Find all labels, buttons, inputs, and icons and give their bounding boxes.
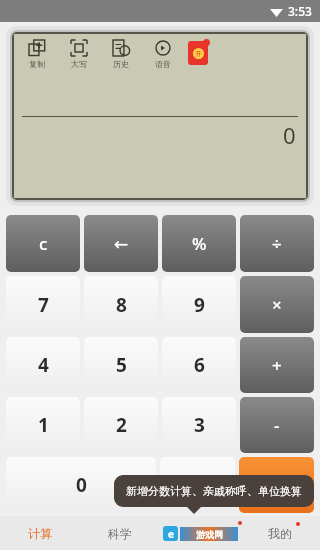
button[interactable]: 8 [84, 276, 158, 333]
staticText: ÷ [272, 232, 282, 255]
button[interactable]: 大写 [64, 39, 94, 69]
staticText: 6 [194, 352, 205, 378]
button[interactable]: 0 [6, 457, 156, 513]
staticText: e [168, 527, 174, 541]
button[interactable]: 7 [6, 276, 80, 333]
staticText: × [272, 293, 282, 316]
staticText: . [195, 472, 201, 498]
staticText: + [272, 354, 282, 377]
staticText: 我的 [268, 526, 292, 541]
button[interactable]: 历史 [106, 39, 136, 69]
staticText: 语音 [155, 59, 171, 69]
staticText: 7 [38, 292, 49, 318]
button[interactable]: 新增分数计算、亲戚称呼、单位换算 [114, 475, 314, 507]
button[interactable]: 4 [6, 337, 80, 393]
staticText: 计算 [28, 526, 52, 541]
staticText: 4 [38, 352, 49, 378]
staticText: 8 [116, 292, 127, 318]
button[interactable]: ← [84, 215, 158, 272]
button[interactable]: ÷ [240, 215, 314, 272]
staticText: 科学 [108, 526, 132, 541]
button[interactable]: × [240, 276, 314, 333]
staticText: 3 [194, 412, 205, 438]
staticText: 新增分数计算、亲戚称呼、单位换算 [126, 484, 302, 498]
staticText: % [192, 232, 207, 255]
button[interactable]: % [162, 215, 236, 272]
staticText: 2 [116, 412, 127, 438]
button[interactable]: 3 [162, 397, 236, 453]
staticText: = [271, 472, 282, 498]
staticText: 5 [116, 352, 127, 378]
button[interactable]: 红包 [188, 39, 210, 65]
button[interactable]: c [6, 215, 80, 272]
button[interactable]: 9 [162, 276, 236, 333]
button[interactable]: + [240, 337, 314, 393]
staticText: 开 [195, 49, 202, 58]
button[interactable]: . [160, 457, 235, 513]
button[interactable]: 2 [84, 397, 158, 453]
button[interactable]: 语音 [148, 39, 178, 69]
button[interactable]: 复制 [22, 39, 52, 69]
button[interactable]: - [240, 397, 314, 453]
button[interactable]: 5 [84, 337, 158, 393]
button[interactable]: 1 [6, 397, 80, 453]
staticText: 0 [76, 472, 87, 498]
staticText: 大写 [71, 59, 87, 69]
staticText: 复制 [29, 59, 45, 69]
button[interactable]: 科学 [80, 516, 160, 550]
button[interactable]: = [239, 457, 314, 513]
button[interactable]: 我的 [240, 516, 320, 550]
staticText: 历史 [113, 59, 129, 69]
staticText: 3:53 [288, 3, 312, 19]
staticText: c [39, 232, 48, 255]
staticText: 0 [283, 120, 296, 150]
button[interactable]: 更多 [163, 526, 238, 541]
staticText: - [274, 414, 280, 437]
button[interactable]: 6 [162, 337, 236, 393]
staticText: 9 [194, 292, 205, 318]
staticText: 1 [38, 412, 49, 438]
staticText: ← [114, 234, 129, 254]
staticText: 游戏网 [196, 529, 223, 540]
button[interactable]: 计算 [0, 516, 80, 550]
